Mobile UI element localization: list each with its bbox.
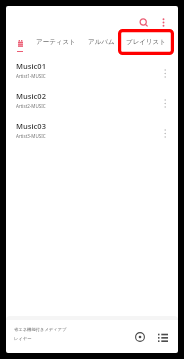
staticText: プレイリスト xyxy=(126,38,166,46)
staticText: 省エネ機能付きメディアプレイヤー xyxy=(14,327,67,341)
staticText: アーティスト xyxy=(36,38,76,46)
staticText: Music03 xyxy=(16,121,46,131)
button[interactable]: Tracks xyxy=(9,33,35,58)
staticText: アルバム xyxy=(88,38,115,46)
staticText: Music02 xyxy=(16,91,46,101)
button[interactable]: Music03 xyxy=(6,118,178,148)
button[interactable]: Queue xyxy=(154,328,172,346)
staticText: Artist2-MUSIC xyxy=(16,103,46,109)
button[interactable]: Track menu xyxy=(156,125,172,141)
button[interactable]: アルバム xyxy=(83,33,120,58)
button[interactable]: 省エネ機能付きメディアプレイヤー xyxy=(6,320,178,353)
button[interactable]: Music01 xyxy=(6,58,178,88)
button[interactable]: プレイリスト xyxy=(121,33,171,58)
button[interactable]: Track menu xyxy=(156,95,172,111)
button[interactable]: Search xyxy=(133,12,154,33)
button[interactable]: More options xyxy=(153,12,174,33)
button[interactable]: アーティスト xyxy=(31,33,81,58)
staticText: Music01 xyxy=(16,61,46,71)
button[interactable]: Music02 xyxy=(6,88,178,118)
staticText: Artist3-MUSIC xyxy=(16,133,46,139)
button[interactable]: Play xyxy=(131,328,149,346)
button[interactable]: Track menu xyxy=(156,65,172,81)
staticText: Artist1-MUSIC xyxy=(16,73,46,79)
